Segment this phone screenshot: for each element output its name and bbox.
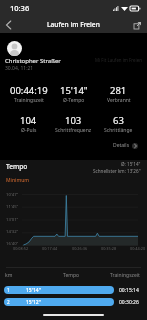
staticText: Trainingszeit — [110, 272, 140, 279]
staticText: Verbrannt — [107, 97, 131, 104]
staticText: Mi Fit Laufen im Freien — [95, 57, 142, 63]
staticText: Schnellster km: 13'26" — [93, 168, 141, 174]
staticText: 00:35:28 — [101, 246, 117, 251]
staticText: 281 — [110, 84, 127, 97]
staticText: Details — [113, 142, 130, 149]
staticText: 15'14" — [60, 84, 88, 97]
staticText: 11'45" — [6, 204, 19, 210]
button[interactable]: Export — [129, 17, 145, 33]
staticText: Schrittfrequenz — [55, 127, 92, 134]
staticText: 00:15:14 — [119, 287, 139, 294]
staticText: 1 — [7, 287, 10, 293]
button[interactable]: 1 — [4, 286, 139, 294]
staticText: Tempo — [63, 272, 80, 279]
button[interactable]: 2 — [4, 298, 139, 306]
staticText: 10'47" — [6, 192, 19, 198]
staticText: Tempo — [6, 162, 28, 171]
staticText: 10:36 — [10, 3, 30, 13]
staticText: 104 — [20, 114, 37, 127]
staticText: 30.04, 11:21 — [5, 65, 34, 72]
staticText: 00:44:20 — [130, 246, 146, 251]
staticText: Schrittlänge — [104, 127, 133, 134]
staticText: 16'40" — [6, 241, 19, 247]
staticText: Minimum — [6, 177, 30, 184]
staticText: Ø: 15'14" — [121, 161, 141, 167]
staticText: Ø-Puls — [21, 127, 37, 134]
staticText: km — [5, 272, 13, 279]
staticText: 15'12" — [26, 299, 41, 306]
button[interactable]: Details — [111, 140, 140, 151]
staticText: 00:08:52 — [13, 246, 29, 251]
staticText: 00:26:36 — [72, 246, 88, 251]
staticText: 00:44:19 — [10, 84, 48, 97]
staticText: 63 — [113, 114, 124, 127]
staticText: Trainingszeit — [14, 97, 44, 104]
staticText: Laufen im Freien — [47, 20, 100, 29]
button[interactable]: Back — [0, 16, 17, 33]
staticText: 13'01" — [6, 217, 19, 223]
staticText: 2 — [7, 299, 10, 305]
staticText: 00:17:44 — [42, 246, 58, 251]
staticText: Christopher Straßer — [5, 57, 61, 65]
staticText: 15'14" — [26, 287, 41, 294]
staticText: Ø-Tempo — [63, 97, 85, 104]
staticText: 00:30:26 — [119, 299, 139, 306]
staticText: 14'32" — [6, 229, 19, 235]
staticText: 103 — [65, 114, 82, 127]
